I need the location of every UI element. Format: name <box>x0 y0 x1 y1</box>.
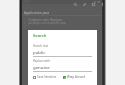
staticText: package com.example.app <box>28 21 66 25</box>
button[interactable]: More options <box>99 1 105 7</box>
staticText: Case Sensitive <box>37 75 57 79</box>
staticText: Wrap Around <box>67 75 86 79</box>
staticText: public <box>33 49 46 55</box>
button[interactable]: Save <box>90 1 96 7</box>
staticText: Search <box>33 33 47 39</box>
staticText: 9:41 <box>24 0 30 4</box>
staticText: Application.java <box>24 10 50 15</box>
staticText: Search text <box>33 44 49 48</box>
staticText: Compose code flow.java <box>28 18 62 22</box>
button[interactable]: Search <box>72 1 78 7</box>
button[interactable]: Wrap Around <box>62 75 87 79</box>
staticText: Replace with <box>33 59 51 63</box>
staticText: 2 <box>24 21 26 25</box>
button[interactable]: Edit <box>81 1 87 7</box>
button[interactable]: Case Sensitive <box>32 75 58 79</box>
staticText: genuine <box>33 64 50 70</box>
